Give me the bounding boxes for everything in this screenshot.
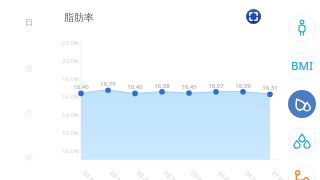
staticText: 03-22 — [135, 169, 152, 180]
button[interactable]: 日 — [18, 11, 40, 33]
staticText: 10.0% — [62, 147, 79, 155]
staticText: 03-27 — [162, 169, 179, 180]
staticText: 12.0% — [62, 129, 79, 137]
staticText: 18.0% — [62, 75, 79, 83]
staticText: 16.0% — [62, 93, 79, 101]
staticText: 16.75 — [100, 80, 116, 88]
staticText: 脂肪率 — [64, 11, 94, 24]
staticText: 16.40 — [127, 83, 143, 91]
button[interactable]: Body water — [288, 127, 316, 155]
staticText: 20.0% — [62, 57, 79, 65]
button[interactable]: Muscle — [288, 165, 316, 180]
staticText: 04-01 — [216, 169, 233, 180]
staticText: 03-31 — [189, 169, 206, 180]
staticText: 週 — [25, 63, 33, 73]
staticText: 16.45 — [181, 83, 197, 91]
button[interactable]: Body fat — [288, 90, 316, 118]
button[interactable]: BMI — [288, 52, 316, 80]
staticText: 03-04 — [81, 169, 98, 180]
button[interactable]: Fullscreen — [246, 9, 261, 24]
staticText: 22.0% — [62, 39, 79, 47]
staticText: 年 — [25, 153, 33, 163]
staticText: 16.40 — [73, 83, 89, 91]
staticText: 16.59 — [235, 82, 251, 90]
staticText: BMI — [291, 58, 314, 74]
staticText: 16.58 — [154, 82, 170, 90]
staticText: 日 — [25, 17, 33, 27]
staticText: 03-14 — [108, 169, 125, 180]
button[interactable]: 週 — [18, 57, 40, 79]
staticText: 16.31 — [262, 84, 278, 92]
staticText: 16.57 — [208, 82, 224, 90]
button[interactable]: Weight — [288, 14, 316, 42]
button[interactable]: 年 — [18, 147, 40, 169]
staticText: 07-08 — [270, 169, 287, 180]
staticText: 04-21 — [243, 169, 260, 180]
staticText: 月 — [25, 108, 33, 118]
staticText: 14.0% — [62, 111, 79, 119]
